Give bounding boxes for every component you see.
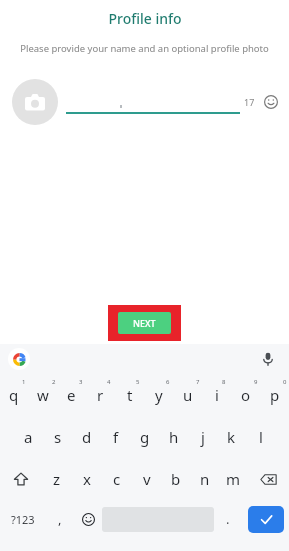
button[interactable]: Voice input — [257, 348, 279, 370]
staticText: b — [171, 469, 181, 489]
button[interactable]: x — [72, 458, 102, 500]
staticText: g — [140, 427, 150, 447]
staticText: 6 — [166, 378, 170, 386]
button[interactable]: k — [217, 416, 246, 458]
staticText: 2 — [52, 378, 56, 386]
button[interactable]: Emoji — [260, 91, 282, 113]
staticText: c — [113, 469, 121, 489]
staticText: 9 — [254, 378, 258, 386]
button[interactable]: NEXT — [118, 312, 171, 334]
staticText: n — [200, 469, 210, 489]
staticText: NEXT — [133, 317, 156, 329]
button[interactable]: o — [231, 374, 260, 416]
staticText: 5 — [136, 378, 140, 386]
staticText: p — [270, 385, 280, 405]
staticText: q — [9, 385, 19, 405]
staticText: m — [226, 469, 241, 489]
staticText: a — [24, 427, 33, 447]
button[interactable]: s — [43, 416, 72, 458]
staticText: e — [67, 385, 76, 405]
button[interactable]: z — [42, 458, 72, 500]
staticText: i — [215, 385, 219, 405]
staticText: w — [37, 385, 49, 405]
staticText: 8 — [222, 378, 226, 386]
button[interactable]: Google — [8, 348, 30, 370]
button[interactable]: e — [57, 374, 86, 416]
staticText: 1 — [22, 378, 26, 386]
button[interactable]: t — [115, 374, 144, 416]
staticText: r — [97, 385, 104, 405]
button[interactable]: b — [161, 458, 190, 500]
staticText: j — [201, 427, 205, 447]
button[interactable]: Shift — [0, 458, 42, 500]
staticText: x — [83, 469, 91, 489]
staticText: u — [183, 385, 193, 405]
staticText: ?123 — [11, 512, 35, 527]
staticText: 4 — [107, 378, 111, 386]
button[interactable]: r — [86, 374, 115, 416]
button[interactable]: y — [144, 374, 173, 416]
staticText: 17 — [244, 96, 255, 108]
button[interactable]: a — [14, 416, 43, 458]
button[interactable]: v — [132, 458, 161, 500]
staticText: k — [227, 427, 236, 447]
button[interactable]: Backspace — [248, 458, 289, 500]
button[interactable]: h — [159, 416, 188, 458]
staticText: l — [259, 427, 263, 447]
button[interactable]: g — [130, 416, 159, 458]
staticText: z — [53, 469, 61, 489]
button[interactable]: ?123 — [0, 500, 46, 538]
staticText: o — [241, 385, 251, 405]
button[interactable]: Add profile photo — [12, 79, 58, 125]
button[interactable]: n — [190, 458, 219, 500]
staticText: s — [54, 427, 62, 447]
button[interactable]: Space — [102, 500, 214, 538]
button[interactable]: l — [246, 416, 275, 458]
button[interactable]: p — [260, 374, 289, 416]
button[interactable]: d — [72, 416, 101, 458]
staticText: Please provide your name and an optional… — [20, 42, 269, 55]
staticText: . — [226, 510, 230, 528]
button[interactable]: q — [0, 374, 28, 416]
button[interactable]: m — [219, 458, 248, 500]
button[interactable] — [66, 79, 240, 125]
button[interactable]: j — [188, 416, 217, 458]
button[interactable]: i — [202, 374, 231, 416]
staticText: d — [82, 427, 92, 447]
button[interactable]: , — [46, 500, 74, 538]
staticText: v — [143, 469, 151, 489]
button[interactable]: c — [102, 458, 132, 500]
staticText: 0 — [283, 378, 287, 386]
staticText: 3 — [79, 378, 83, 386]
button[interactable]: Emoji — [74, 500, 102, 538]
staticText: 7 — [196, 378, 200, 386]
staticText: h — [169, 427, 179, 447]
staticText: y — [155, 385, 163, 405]
button[interactable]: w — [28, 374, 57, 416]
staticText: f — [113, 427, 119, 447]
staticText: , — [58, 510, 62, 528]
staticText: t — [127, 385, 133, 405]
button[interactable]: u — [173, 374, 202, 416]
button[interactable]: Enter — [242, 500, 289, 538]
button[interactable]: f — [101, 416, 130, 458]
button[interactable]: . — [214, 500, 242, 538]
staticText: Profile info — [108, 9, 182, 28]
